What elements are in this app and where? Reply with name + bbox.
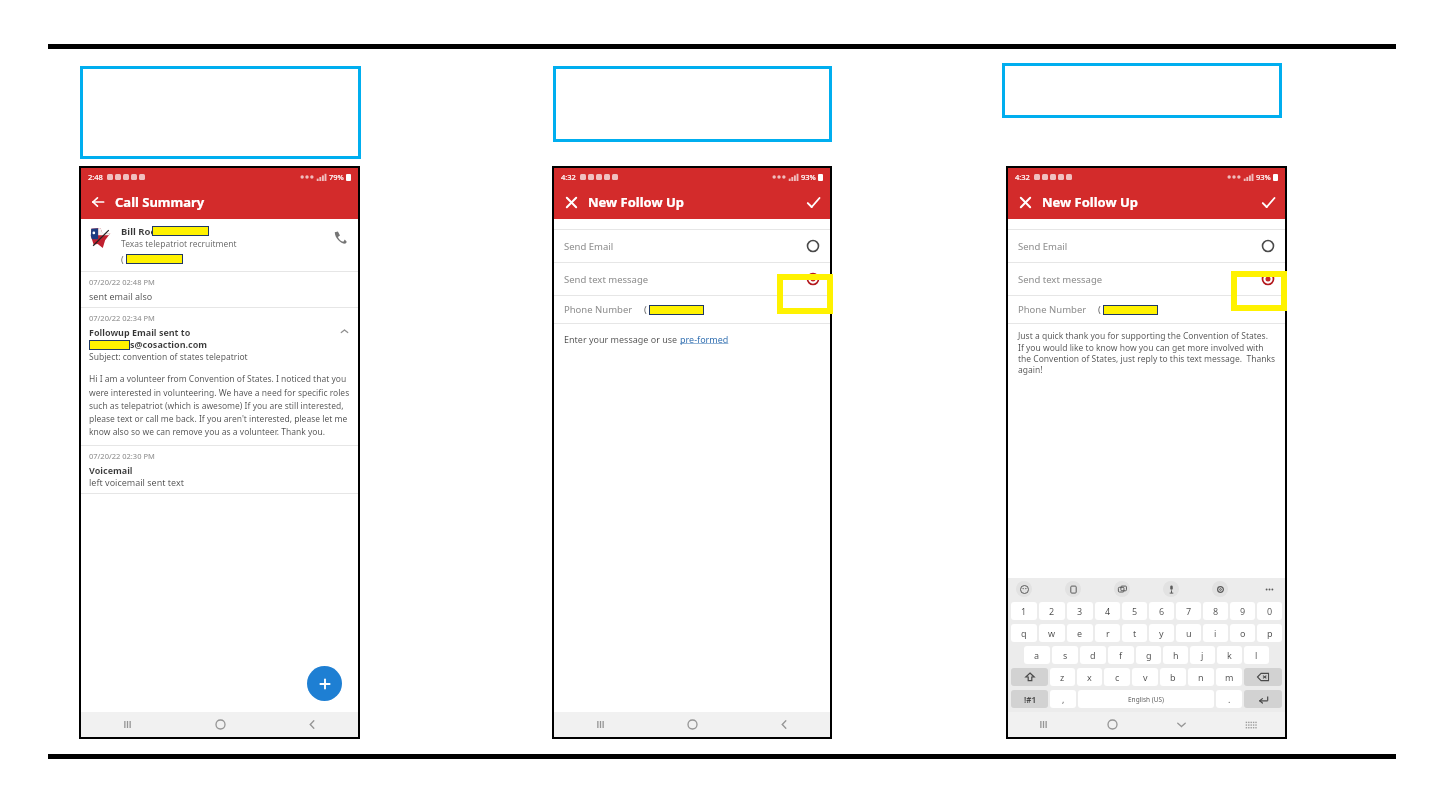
staticText: Texas telepatriot recruitment (121, 238, 237, 250)
button[interactable]: i (1203, 624, 1228, 642)
staticText: 0 (1267, 605, 1273, 617)
button[interactable]: Backspace (1244, 668, 1282, 686)
button[interactable]: w (1039, 624, 1065, 642)
button[interactable]: 0 (1257, 602, 1282, 620)
button[interactable]: o (1230, 624, 1255, 642)
button[interactable]: q (1011, 624, 1037, 642)
button[interactable]: Symbols (1011, 690, 1048, 708)
button[interactable]: 07/20/22 02:34 PM (81, 308, 358, 445)
button[interactable]: More options (1261, 581, 1277, 597)
button[interactable]: 7 (1176, 602, 1201, 620)
button[interactable]: 07/20/22 02:48 PM (81, 272, 358, 307)
staticText: d (1090, 649, 1096, 661)
button[interactable]: m (1216, 668, 1242, 686)
button[interactable]: Enter (1244, 690, 1282, 708)
button[interactable]: 07/20/22 02:30 PM (81, 446, 358, 493)
button[interactable]: Call (328, 225, 352, 249)
button[interactable]: e (1067, 624, 1093, 642)
button[interactable]: 4 (1095, 602, 1120, 620)
staticText: Send Email (1018, 240, 1068, 253)
button[interactable]: Back (738, 712, 830, 737)
staticText: 07/20/22 02:30 PM (89, 451, 155, 461)
staticText: Send text message (564, 273, 649, 286)
button[interactable]: Shift (1011, 668, 1048, 686)
button[interactable]: 1 (1011, 602, 1037, 620)
button[interactable]: p (1257, 624, 1282, 642)
button[interactable]: g (1136, 646, 1161, 664)
button[interactable]: Save (1251, 185, 1285, 219)
button[interactable]: f (1108, 646, 1134, 664)
button[interactable]: x (1077, 668, 1102, 686)
button[interactable]: Send text message (554, 263, 830, 295)
staticText: g (1146, 649, 1152, 661)
button[interactable]: Home (646, 712, 738, 737)
staticText: ( (644, 303, 647, 316)
button[interactable]: 3 (1067, 602, 1093, 620)
button[interactable]: 9 (1230, 602, 1255, 620)
button[interactable]: c (1104, 668, 1130, 686)
button[interactable]: Save (796, 185, 830, 219)
button[interactable]: Recents (1008, 712, 1078, 737)
button[interactable]: 2 (1039, 602, 1065, 620)
button[interactable]: Recents (81, 712, 174, 737)
button[interactable]: Close (1008, 185, 1042, 219)
button[interactable]: Bill Rock (81, 219, 358, 271)
button[interactable]: n (1188, 668, 1214, 686)
staticText: 3 (1077, 605, 1083, 617)
button[interactable]: English (US) (1078, 690, 1214, 708)
button[interactable]: Phone Number (554, 296, 830, 323)
button[interactable]: Send Email (554, 230, 830, 262)
button[interactable]: Recents (554, 712, 646, 737)
button[interactable]: s (1052, 646, 1078, 664)
staticText: w (1048, 627, 1056, 639)
button[interactable]: Phone Number (1008, 296, 1285, 323)
button[interactable]: Home (174, 712, 266, 737)
staticText: 6 (1159, 605, 1165, 617)
button[interactable]: Close (554, 185, 588, 219)
staticText: 7 (1186, 605, 1192, 617)
staticText: s@cosaction.com (130, 338, 208, 350)
button[interactable]: Switch keyboard (1216, 712, 1285, 737)
button[interactable]: t (1122, 624, 1147, 642)
button[interactable]: . (1216, 690, 1242, 708)
staticText: , (1062, 693, 1065, 705)
staticText: 8 (1213, 605, 1219, 617)
button[interactable]: Send Email (1008, 230, 1285, 262)
staticText: i (1214, 627, 1217, 639)
button[interactable]: l (1244, 646, 1269, 664)
button[interactable]: Voice input (1163, 581, 1179, 597)
staticText: j (1201, 649, 1204, 661)
staticText: a (1034, 649, 1040, 661)
button[interactable]: d (1080, 646, 1106, 664)
button[interactable]: b (1160, 668, 1186, 686)
button[interactable]: 6 (1149, 602, 1174, 620)
button[interactable]: Keyboard settings (1212, 581, 1228, 597)
button[interactable]: k (1217, 646, 1242, 664)
button[interactable]: , (1050, 690, 1076, 708)
staticText: New Follow Up (1042, 193, 1139, 211)
button[interactable]: Stickers (1114, 581, 1130, 597)
button[interactable]: r (1095, 624, 1120, 642)
button[interactable]: Home (1078, 712, 1147, 737)
staticText: 93% (801, 172, 816, 182)
button[interactable]: v (1132, 668, 1158, 686)
button[interactable]: Clipboard (1065, 581, 1081, 597)
button[interactable]: h (1163, 646, 1188, 664)
button[interactable]: Back (266, 712, 358, 737)
button[interactable]: 8 (1203, 602, 1228, 620)
staticText: Phone Number (1018, 303, 1087, 316)
button[interactable]: j (1190, 646, 1215, 664)
button[interactable]: 5 (1122, 602, 1147, 620)
staticText: m (1225, 671, 1234, 683)
button[interactable]: pre-formed (680, 333, 729, 345)
button[interactable]: Add (307, 666, 342, 701)
button[interactable]: Send text message (1008, 263, 1285, 295)
button[interactable]: z (1050, 668, 1075, 686)
button[interactable]: Collapse (338, 325, 350, 337)
button[interactable]: u (1176, 624, 1201, 642)
button[interactable]: y (1149, 624, 1174, 642)
button[interactable]: Hide keyboard (1147, 712, 1216, 737)
button[interactable]: a (1024, 646, 1050, 664)
button[interactable]: Back (81, 185, 115, 219)
button[interactable]: Emoji (1016, 581, 1032, 597)
